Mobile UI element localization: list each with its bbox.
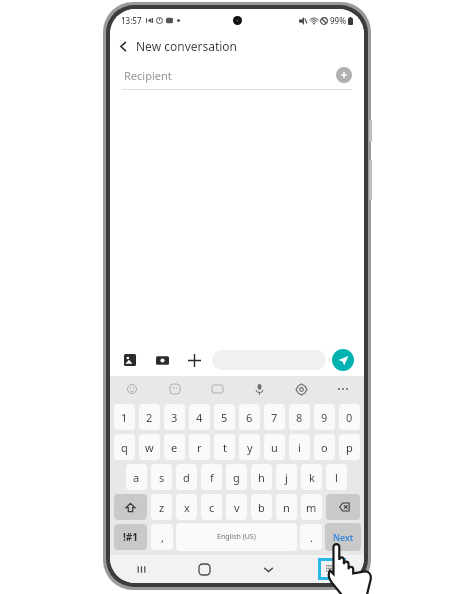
staticText: 99% — [330, 15, 346, 26]
button[interactable]: q — [114, 434, 135, 460]
staticText: b — [258, 500, 265, 515]
staticText: New conversation — [136, 38, 238, 54]
button[interactable]: e — [164, 434, 185, 460]
button[interactable]: f — [201, 464, 222, 490]
staticText: k — [309, 470, 315, 485]
button[interactable]: g — [226, 464, 247, 490]
button[interactable]: Camera — [152, 350, 172, 370]
staticText: q — [121, 440, 128, 455]
staticText: Next — [333, 531, 354, 543]
button[interactable]: p — [339, 434, 360, 460]
staticText: 0 — [346, 410, 353, 425]
staticText: u — [271, 440, 278, 455]
button[interactable]: Settings — [280, 376, 322, 402]
button[interactable]: u — [264, 434, 285, 460]
button[interactable]: 8 — [289, 404, 310, 430]
staticText: 9 — [321, 410, 328, 425]
button[interactable]: v — [226, 494, 247, 520]
staticText: l — [335, 470, 338, 485]
staticText: 5 — [221, 410, 228, 425]
button[interactable]: z — [151, 494, 172, 520]
button[interactable]: GIF — [196, 376, 238, 402]
button[interactable]: n — [276, 494, 297, 520]
button[interactable]: Emoji — [110, 376, 153, 402]
staticText: 13:57 — [121, 15, 142, 26]
staticText: 3 — [171, 410, 178, 425]
staticText: w — [145, 440, 154, 455]
button[interactable]: Stickers — [153, 376, 196, 402]
button[interactable]: r — [189, 434, 210, 460]
staticText: t — [223, 440, 227, 455]
staticText: 6 — [246, 410, 253, 425]
staticText: . — [310, 530, 313, 545]
staticText: y — [247, 440, 253, 455]
button[interactable]: m — [301, 494, 322, 520]
button[interactable]: 1 — [114, 404, 135, 430]
button[interactable]: Keyboard layout — [321, 561, 343, 577]
button[interactable]: , — [151, 524, 173, 550]
button[interactable]: More options — [184, 350, 204, 370]
button[interactable]: w — [139, 434, 160, 460]
button[interactable]: !#1 — [114, 524, 147, 550]
button[interactable]: l — [326, 464, 347, 490]
button[interactable]: o — [314, 434, 335, 460]
button[interactable]: a — [126, 464, 147, 490]
button[interactable]: Voice input — [238, 376, 280, 402]
button[interactable]: . — [300, 524, 322, 550]
staticText: g — [233, 470, 240, 485]
staticText: !#1 — [123, 530, 138, 544]
button[interactable]: More — [322, 376, 364, 402]
button[interactable]: 4 — [189, 404, 210, 430]
button[interactable]: Send — [332, 349, 354, 371]
button[interactable]: x — [176, 494, 197, 520]
button[interactable]: Gallery — [120, 350, 140, 370]
staticText: m — [306, 500, 317, 515]
staticText: c — [209, 500, 215, 515]
button[interactable]: 9 — [314, 404, 335, 430]
staticText: English (US) — [217, 532, 256, 542]
staticText: z — [159, 500, 165, 515]
staticText: p — [346, 440, 353, 455]
button[interactable]: 2 — [139, 404, 160, 430]
staticText: 2 — [146, 410, 153, 425]
button[interactable]: Backspace — [326, 494, 360, 520]
button[interactable]: k — [301, 464, 322, 490]
button[interactable]: j — [276, 464, 297, 490]
button[interactable]: 5 — [214, 404, 235, 430]
button[interactable]: 0 — [339, 404, 360, 430]
button[interactable]: Home — [173, 555, 236, 583]
button[interactable]: Next — [325, 523, 361, 551]
button[interactable]: t — [214, 434, 235, 460]
button[interactable]: 3 — [164, 404, 185, 430]
staticText: Recipient — [124, 68, 172, 83]
staticText: f — [210, 470, 214, 485]
button[interactable]: Hide keyboard — [236, 555, 300, 583]
button[interactable]: 7 — [264, 404, 285, 430]
button[interactable]: 6 — [239, 404, 260, 430]
staticText: a — [133, 470, 140, 485]
staticText: 1 — [121, 410, 128, 425]
staticText: 8 — [296, 410, 303, 425]
button[interactable]: i — [289, 434, 310, 460]
staticText: j — [285, 470, 288, 485]
button[interactable]: English (US) — [176, 523, 297, 551]
button[interactable]: s — [151, 464, 172, 490]
button[interactable]: Recents — [110, 555, 173, 583]
staticText: x — [184, 500, 190, 515]
button[interactable]: c — [201, 494, 222, 520]
staticText: r — [197, 440, 202, 455]
staticText: d — [183, 470, 190, 485]
button[interactable]: Back — [110, 33, 136, 59]
button[interactable]: d — [176, 464, 197, 490]
button[interactable]: h — [251, 464, 272, 490]
staticText: o — [321, 440, 328, 455]
button[interactable]: Add recipient — [336, 67, 352, 83]
button[interactable]: b — [251, 494, 272, 520]
button[interactable]: y — [239, 434, 260, 460]
staticText: s — [159, 470, 165, 485]
staticText: h — [258, 470, 265, 485]
staticText: n — [283, 500, 290, 515]
staticText: 7 — [271, 410, 278, 425]
button[interactable]: Shift — [114, 494, 147, 520]
